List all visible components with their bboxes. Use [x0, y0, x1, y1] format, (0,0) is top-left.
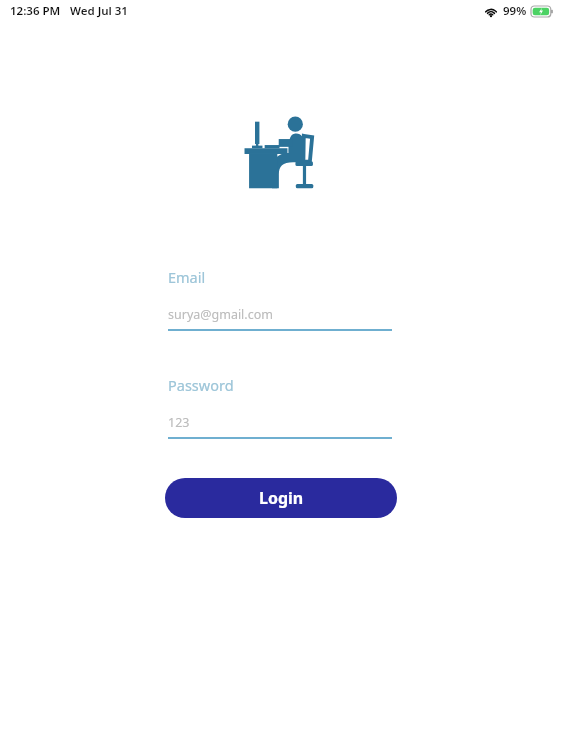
button[interactable]: Login — [165, 478, 397, 518]
button[interactable]: Email — [168, 267, 392, 331]
staticText: 12:36 PM — [10, 3, 61, 19]
staticText: Password — [168, 375, 234, 395]
staticText: Login — [259, 487, 304, 509]
staticText: 123 — [168, 414, 190, 431]
other: Battery 99 percent charging — [531, 6, 554, 17]
staticText: surya@gmail.com — [168, 306, 273, 323]
button[interactable]: Password — [168, 375, 392, 439]
other: Person working at a desk — [243, 112, 319, 194]
other: Wi-Fi — [484, 6, 498, 17]
staticText: Wed Jul 31 — [70, 3, 128, 19]
staticText: Email — [168, 267, 206, 287]
staticText: 99% — [503, 3, 527, 19]
